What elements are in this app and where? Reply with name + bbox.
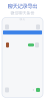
staticText: 聊天 <box>19 18 25 21</box>
staticText: 微信聊天备份 <box>10 11 34 15</box>
staticText: 聊天记录导出 <box>7 3 37 10</box>
